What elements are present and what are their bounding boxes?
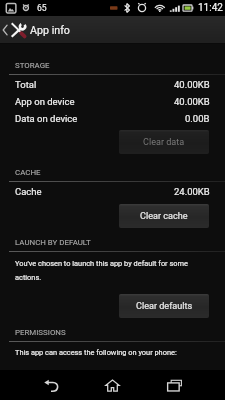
button[interactable]: Back — [29, 373, 72, 397]
staticText: Clear cache — [140, 211, 188, 222]
staticText: CACHE — [15, 168, 41, 177]
button[interactable]: Recent apps — [153, 373, 196, 397]
staticText: Cache — [15, 186, 42, 197]
staticText: This app can access the following on you… — [15, 348, 177, 357]
button[interactable]: Clear cache — [119, 204, 209, 228]
button[interactable]: Home — [91, 373, 134, 397]
staticText: App info — [30, 24, 70, 37]
staticText: Clear defaults — [136, 301, 193, 312]
staticText: 24.00KB — [174, 186, 210, 197]
staticText: Data on device — [15, 113, 78, 124]
staticText: LAUNCH BY DEFAULT — [15, 238, 91, 247]
staticText: 40.00KB — [174, 96, 210, 107]
staticText: App on device — [15, 96, 75, 107]
staticText: Clear data — [143, 137, 185, 148]
staticText: You've chosen to launch this app by defa… — [15, 259, 193, 282]
button[interactable]: Clear defaults — [119, 294, 209, 318]
staticText: 0.00B — [185, 113, 210, 124]
staticText: Total — [15, 79, 37, 90]
staticText: PERMISSIONS — [15, 328, 66, 337]
staticText: 11:42 — [198, 2, 223, 14]
staticText: 65 — [37, 3, 47, 13]
staticText: 40.00KB — [174, 79, 210, 90]
button[interactable]: Navigate up — [0, 16, 225, 44]
staticText: STORAGE — [15, 61, 50, 70]
button[interactable]: Clear data — [119, 130, 209, 154]
